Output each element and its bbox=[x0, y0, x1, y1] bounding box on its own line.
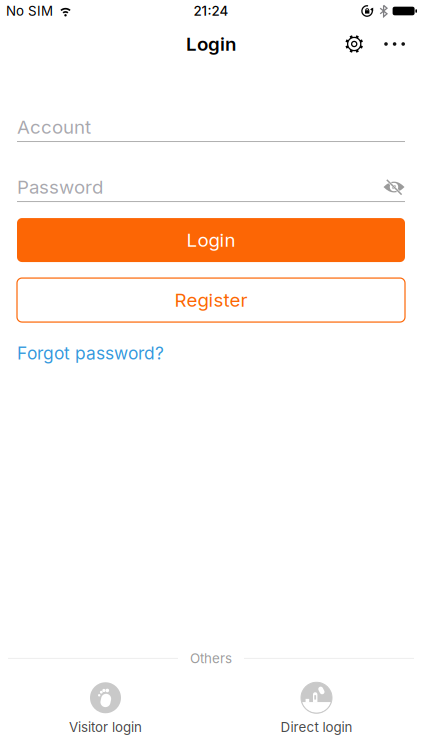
button[interactable]: Settings bbox=[344, 34, 364, 54]
staticText: Visitor login bbox=[69, 719, 142, 735]
staticText: Account bbox=[17, 116, 91, 138]
button[interactable]: More bbox=[384, 42, 405, 46]
staticText: Register bbox=[174, 289, 247, 311]
button[interactable]: Direct login bbox=[211, 682, 422, 735]
button[interactable]: Forgot password? bbox=[17, 343, 164, 363]
staticText: Password bbox=[17, 176, 103, 198]
staticText: Direct login bbox=[280, 719, 352, 735]
staticText: Others bbox=[190, 650, 232, 666]
button[interactable]: Login bbox=[17, 218, 405, 262]
staticText: 21:24 bbox=[193, 3, 228, 19]
staticText: No SIM bbox=[6, 3, 53, 19]
button[interactable]: Visitor login bbox=[0, 682, 211, 735]
staticText: Login bbox=[186, 33, 236, 55]
button[interactable]: Show password bbox=[383, 179, 405, 195]
staticText: Login bbox=[186, 229, 235, 251]
staticText: Forgot password? bbox=[17, 343, 164, 363]
button[interactable]: Register bbox=[17, 278, 405, 322]
